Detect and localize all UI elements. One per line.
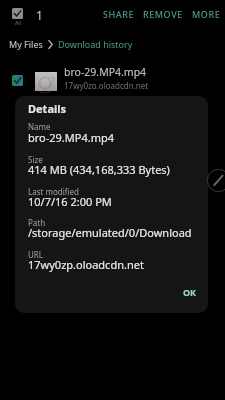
staticText: Name — [28, 121, 51, 132]
staticText: bro-29.MP4.mp4 — [64, 65, 147, 79]
button[interactable]: REMOVE — [143, 8, 183, 20]
staticText: 10/7/16 2:00 PM — [28, 194, 112, 209]
staticText: Download history — [58, 38, 133, 50]
staticText: Details — [28, 101, 67, 116]
staticText: /storage/emulated/0/Download — [28, 225, 192, 240]
staticText: MORE — [192, 8, 221, 20]
staticText: URL — [28, 249, 44, 260]
staticText: 17wy0zp.oloadcdn.net — [28, 257, 144, 272]
button[interactable]: Download history — [58, 38, 133, 50]
staticText: OK — [183, 286, 197, 298]
button[interactable]: Select all — [12, 8, 23, 27]
staticText: All — [15, 20, 21, 27]
button[interactable]: My Files — [9, 38, 43, 50]
staticText: 17wy0zo.oloadcdn.net — [64, 80, 149, 91]
button[interactable]: Scroll handle — [207, 169, 225, 192]
staticText: REMOVE — [143, 8, 183, 20]
staticText: 414 MB (434,168,333 Bytes) — [28, 162, 170, 177]
staticText: Path — [28, 217, 46, 228]
staticText: Last modified — [28, 186, 80, 197]
staticText: My Files — [9, 38, 43, 50]
button[interactable]: MORE — [192, 8, 221, 20]
staticText: SHARE — [103, 8, 135, 20]
button[interactable]: SHARE — [103, 8, 135, 20]
button[interactable]: OK — [179, 283, 201, 301]
staticText: 1 — [36, 7, 43, 23]
button[interactable]: bro-29.MP4.mp4 — [0, 58, 225, 96]
staticText: Size — [28, 154, 43, 165]
staticText: bro-29.MP4.mp4 — [28, 130, 115, 145]
